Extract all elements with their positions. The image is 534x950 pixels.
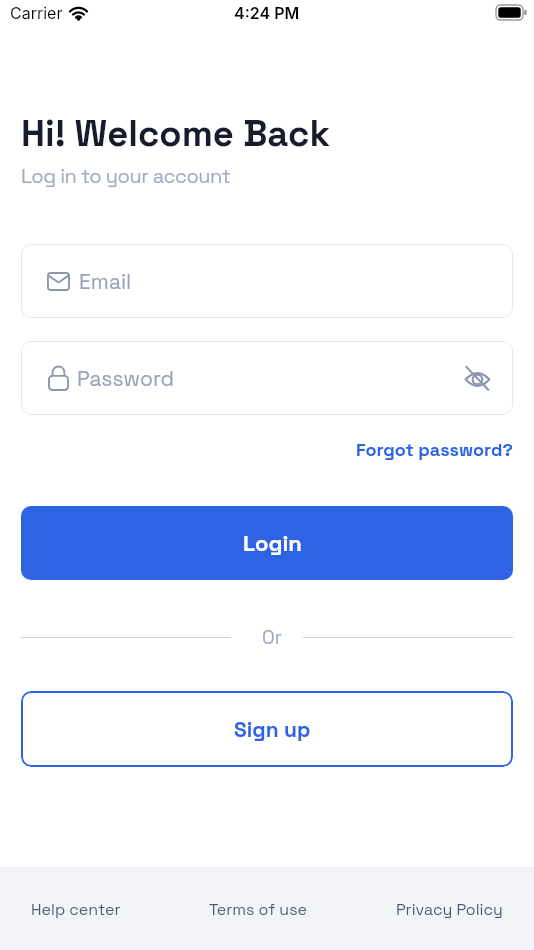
button[interactable]: Sign up (21, 691, 513, 767)
button[interactable]: Privacy Policy (396, 899, 503, 919)
button[interactable]: Password (21, 341, 513, 415)
staticText: Password (77, 365, 174, 392)
staticText: Log in to your account (21, 163, 231, 189)
staticText: Login (243, 529, 302, 557)
button[interactable] (463, 364, 491, 392)
staticText: Hi! Welcome Back (21, 110, 331, 157)
button[interactable]: Forgot password? (356, 438, 513, 461)
button[interactable]: Login (21, 506, 513, 580)
button[interactable]: Help center (31, 899, 121, 919)
staticText: Email (79, 268, 132, 295)
staticText: Sign up (234, 716, 311, 743)
staticText: 4:24 PM (234, 3, 300, 22)
button[interactable]: Terms of use (209, 899, 308, 919)
staticText: Or (262, 625, 282, 649)
staticText: Carrier (10, 3, 63, 22)
button[interactable]: Email (21, 244, 513, 318)
